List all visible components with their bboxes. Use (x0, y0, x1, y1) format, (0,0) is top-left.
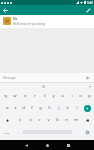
staticText: q (4, 93, 7, 99)
button[interactable]: v (44, 114, 53, 126)
button[interactable]: m (71, 114, 80, 126)
button[interactable]: z (15, 114, 25, 126)
staticText: . (76, 130, 77, 134)
staticText: f (31, 105, 33, 111)
button[interactable]: x (25, 114, 35, 126)
button[interactable]: ?123 (0, 126, 14, 138)
staticText: j (58, 105, 60, 111)
button[interactable]: t (40, 90, 49, 102)
button[interactable]: l (72, 102, 81, 114)
staticText: m (74, 117, 78, 123)
button[interactable]: c (35, 114, 44, 126)
staticText: Me (13, 17, 18, 21)
staticText: u (61, 93, 64, 99)
staticText: Message (3, 76, 16, 80)
button[interactable]: f (27, 102, 36, 114)
button[interactable]: , (14, 126, 23, 138)
button[interactable]: p (85, 90, 94, 102)
button[interactable]: a (3, 102, 11, 114)
staticText: i (71, 93, 73, 99)
button[interactable]: j (54, 102, 63, 114)
staticText: x (29, 117, 32, 123)
button[interactable]: Message (0, 73, 94, 82)
staticText: o (79, 93, 82, 99)
button[interactable]: Home (42, 140, 52, 150)
staticText: k (66, 105, 69, 111)
button[interactable]: w (10, 90, 20, 102)
button[interactable]: q (0, 90, 10, 102)
button[interactable]: Backspace (80, 114, 94, 126)
button[interactable]: Recents (63, 140, 73, 150)
staticText: s (14, 105, 17, 111)
staticText: w (13, 93, 17, 99)
button[interactable]: Send (83, 73, 92, 82)
staticText: a (6, 105, 9, 111)
staticText: y (52, 93, 55, 99)
staticText: ?123 (4, 131, 10, 134)
staticText: v (47, 117, 50, 123)
staticText: 9:45 (87, 1, 93, 5)
button[interactable]: s (11, 102, 19, 114)
button[interactable]: n (62, 114, 71, 126)
button[interactable]: e (20, 90, 30, 102)
button[interactable]: r (30, 90, 40, 102)
staticText: r (34, 93, 36, 99)
staticText: Hi (42, 85, 46, 89)
button[interactable]: k (63, 102, 72, 114)
button[interactable]: h (45, 102, 54, 114)
staticText: t (44, 93, 46, 99)
staticText: , (18, 130, 19, 134)
staticText: g (39, 105, 42, 111)
button[interactable]: g (36, 102, 45, 114)
button[interactable]: Enter (81, 102, 94, 114)
staticText: p (88, 93, 91, 99)
staticText: e (24, 93, 27, 99)
button[interactable]: Back (0, 5, 10, 15)
button[interactable]: b (53, 114, 62, 126)
staticText: z (19, 117, 21, 123)
staticText: l (76, 105, 78, 111)
staticText: Hello how are you doing (13, 22, 45, 26)
button[interactable]: Edit (83, 5, 93, 15)
staticText: b (56, 117, 59, 123)
staticText: c (38, 117, 41, 123)
button[interactable]: Shift (0, 114, 15, 126)
staticText: d (22, 105, 25, 111)
button[interactable]: u (58, 90, 67, 102)
button[interactable]: Emoji (81, 126, 94, 138)
button[interactable]: d (19, 102, 27, 114)
staticText: n (65, 117, 68, 123)
button[interactable]: i (67, 90, 76, 102)
button[interactable]: y (49, 90, 58, 102)
staticText: h (48, 105, 51, 111)
button[interactable]: o (76, 90, 85, 102)
button[interactable]: Back (21, 140, 31, 150)
